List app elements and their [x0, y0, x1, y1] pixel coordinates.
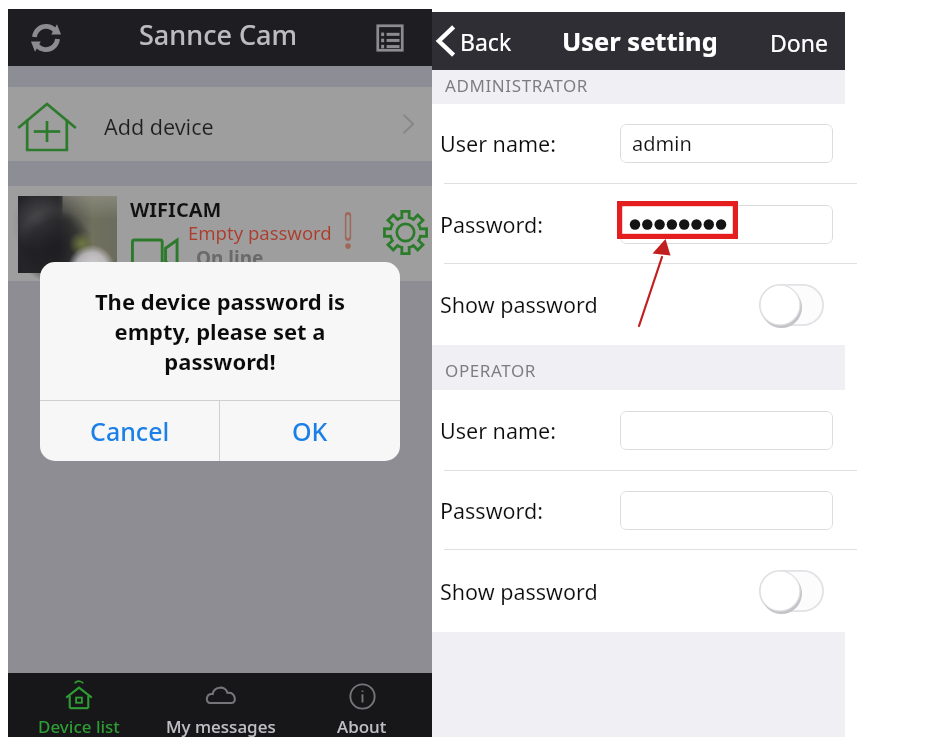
button[interactable]: Refresh — [24, 16, 68, 60]
staticText: Password: — [440, 496, 544, 525]
staticText: User setting — [562, 24, 718, 59]
staticText: The device password is empty, please set… — [64, 286, 376, 376]
staticText: My messages — [166, 715, 276, 737]
button[interactable]: User name: — [432, 390, 845, 470]
staticText: WIFICAM — [130, 196, 222, 223]
button[interactable]: Settings — [382, 209, 429, 256]
staticText: Password: — [440, 210, 544, 239]
staticText: OK — [292, 414, 328, 448]
staticText: Show password — [440, 577, 598, 606]
staticText: ADMINISTRATOR — [445, 74, 588, 97]
staticText: Sannce Cam — [139, 16, 298, 53]
button[interactable]: Password: — [432, 184, 845, 264]
button[interactable]: WIFICAM — [8, 186, 432, 281]
staticText: Back — [460, 26, 512, 57]
button[interactable]: Add device — [8, 87, 432, 161]
staticText: Add device — [104, 112, 214, 141]
button[interactable]: User name: — [432, 104, 845, 183]
button[interactable]: About — [291, 673, 432, 737]
button[interactable]: Done — [770, 21, 828, 63]
button[interactable]: Toggle Show password — [759, 284, 824, 326]
button[interactable]: OK — [220, 401, 400, 461]
button[interactable]: Password: — [432, 471, 845, 550]
button[interactable]: Toggle Show password — [759, 570, 824, 612]
staticText: User name: — [440, 129, 556, 158]
staticText: Device list — [38, 715, 120, 737]
staticText: Done — [770, 27, 828, 58]
button[interactable]: Back — [434, 20, 512, 62]
staticText: On line — [196, 245, 264, 271]
staticText: Show password — [440, 290, 598, 319]
staticText: OPERATOR — [445, 359, 537, 382]
button[interactable]: Event list — [368, 16, 412, 60]
staticText: Empty password — [188, 220, 332, 245]
button[interactable]: Show password — [432, 550, 845, 632]
staticText: User name: — [440, 416, 556, 445]
button[interactable]: Cancel — [40, 401, 219, 461]
staticText: About — [337, 715, 387, 737]
staticText: admin — [632, 130, 692, 157]
button[interactable]: My messages — [150, 673, 291, 737]
staticText: Cancel — [90, 414, 170, 448]
button[interactable]: Device list — [8, 673, 150, 737]
button[interactable]: Show password — [432, 264, 845, 345]
